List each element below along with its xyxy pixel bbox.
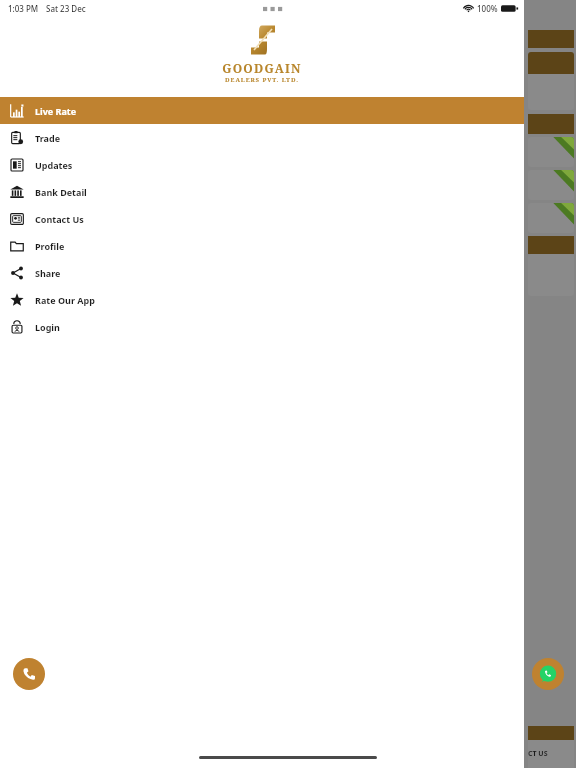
staticText: 1:03 PM [8, 3, 39, 14]
button[interactable]: Live Rate [0, 97, 524, 124]
button[interactable]: Contact Us [0, 205, 524, 232]
button[interactable]: Share [0, 259, 524, 286]
staticText: Bank Detail [35, 186, 87, 198]
button[interactable]: Rate Our App [0, 286, 524, 313]
staticText: CT US [528, 749, 548, 759]
button[interactable]: WhatsApp [532, 658, 564, 690]
staticText: DEALERS PVT. LTD. [225, 76, 299, 84]
staticText: GOODGAIN [222, 60, 302, 76]
staticText: Contact Us [35, 213, 84, 225]
button[interactable]: Profile [0, 232, 524, 259]
button[interactable]: Updates [0, 151, 524, 178]
staticText: Trade [35, 132, 61, 144]
button[interactable]: Bank Detail [0, 178, 524, 205]
button[interactable]: Trade [0, 124, 524, 151]
staticText: 100% [477, 3, 498, 14]
staticText: Live Rate [35, 105, 77, 117]
button[interactable]: Call [13, 658, 45, 690]
staticText: Login [35, 321, 60, 333]
staticText: Profile [35, 240, 65, 252]
staticText: Updates [35, 159, 73, 171]
staticText: Sat 23 Dec [46, 3, 86, 14]
button[interactable]: Login [0, 313, 524, 340]
staticText: Share [35, 267, 61, 279]
staticText: Rate Our App [35, 294, 95, 306]
